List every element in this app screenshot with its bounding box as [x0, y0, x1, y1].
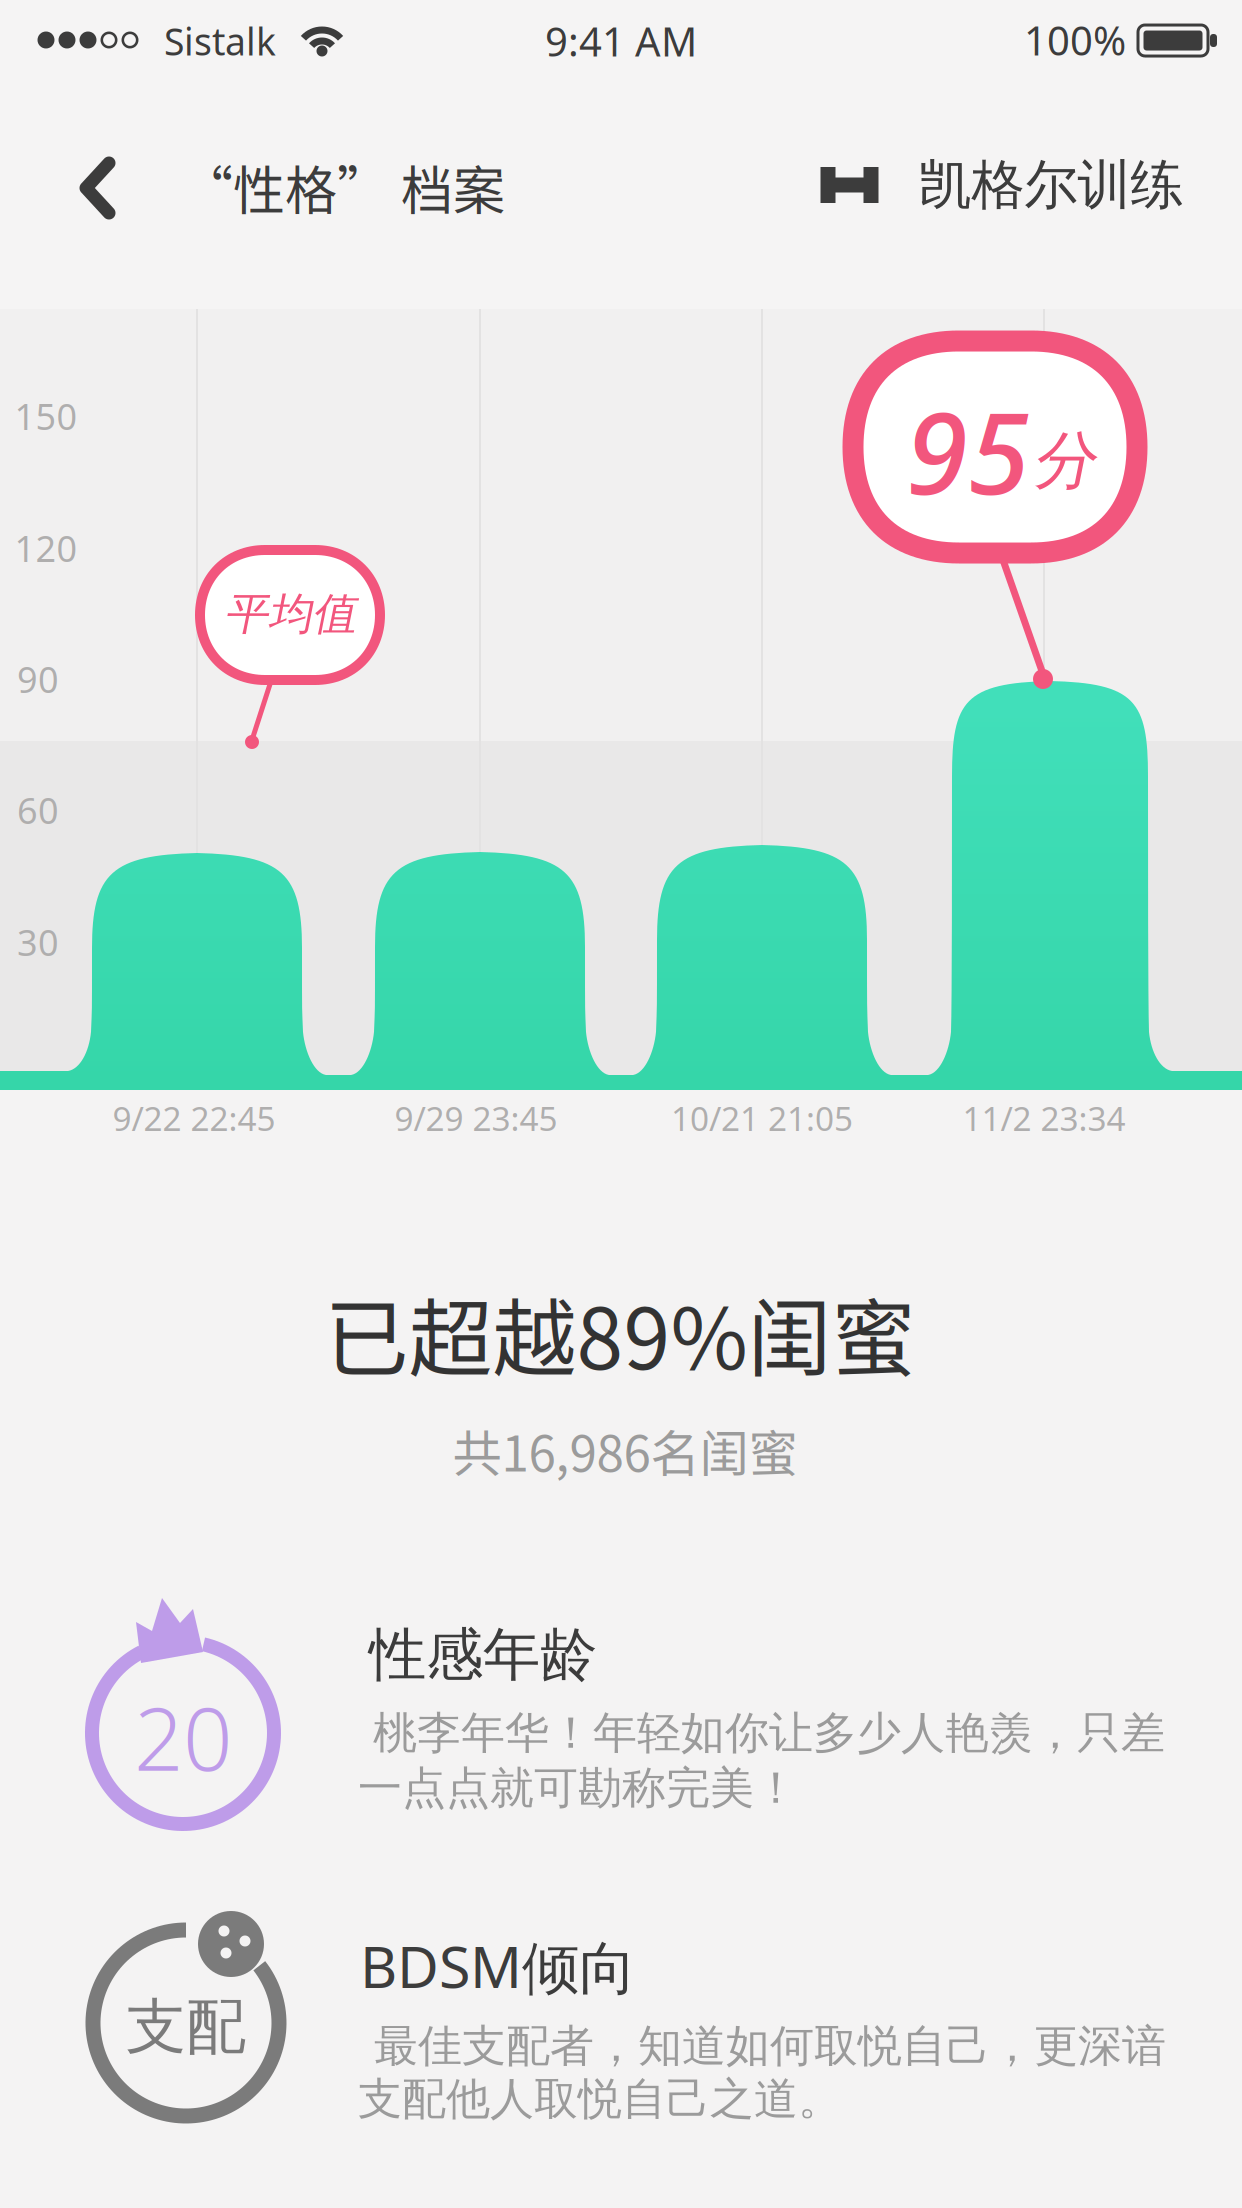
staticText: 凯格尔训练 [918, 152, 1183, 218]
staticText: 10/21 21:05 [671, 1096, 853, 1140]
staticText: Sistalk [164, 16, 276, 66]
staticText: 平均值 [224, 587, 356, 641]
staticText: 性感年龄 [369, 1620, 597, 1690]
staticText: “性格” 档案 [181, 149, 505, 225]
staticText: 支配 [126, 1990, 246, 2064]
staticText: 20 [134, 1679, 232, 1795]
staticText: 已超越89%闺蜜 [324, 1272, 915, 1394]
staticText: BDSM倾向 [360, 1928, 636, 2004]
staticText: 30 [17, 918, 59, 966]
staticText: 90 [17, 655, 59, 703]
staticText: 一点点就可勘称完美！ [358, 1761, 798, 1815]
staticText: 最佳支配者，知道如何取悦自己，更深谙 [374, 2019, 1166, 2073]
staticText: 支配他人取悦自己之道。 [358, 2072, 842, 2126]
staticText: 分 [1032, 422, 1095, 499]
staticText: 共16,986名闺蜜 [452, 1414, 797, 1486]
staticText: 9/29 23:45 [394, 1096, 557, 1140]
button[interactable]: Back [80, 160, 116, 218]
staticText: 11/2 23:34 [962, 1096, 1125, 1140]
staticText: 150 [14, 392, 77, 440]
staticText: 9/22 22:45 [112, 1096, 275, 1140]
staticText: 95 [906, 377, 1030, 525]
button[interactable]: 凯格尔训练 [820, 152, 1183, 218]
staticText: 9:41 AM [545, 14, 697, 67]
staticText: 桃李年华！年轻如你让多少人艳羡，只差 [373, 1706, 1165, 1760]
staticText: 60 [17, 786, 59, 834]
staticText: 100% [1024, 13, 1126, 66]
staticText: 120 [14, 524, 77, 572]
